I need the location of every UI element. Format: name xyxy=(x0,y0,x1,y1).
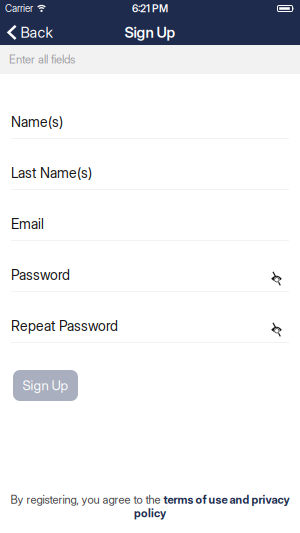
staticText: policy xyxy=(134,506,166,520)
staticText: Back xyxy=(20,24,52,41)
staticText: terms of use and privacy xyxy=(163,493,289,506)
staticText: Carrier xyxy=(5,2,33,14)
staticText: Last Name(s) xyxy=(11,164,92,181)
staticText: Email xyxy=(11,215,44,232)
button[interactable]: Show password xyxy=(270,318,289,334)
staticText: Password xyxy=(11,266,70,283)
staticText: By registering, you agree to the xyxy=(10,493,163,506)
staticText: 6:21 PM xyxy=(132,2,168,15)
button[interactable]: Show password xyxy=(270,267,289,283)
staticText: Enter all fields xyxy=(9,53,75,66)
staticText: Sign Up xyxy=(22,377,68,393)
button[interactable]: Back xyxy=(0,24,52,41)
staticText: Sign Up xyxy=(124,24,175,41)
staticText: Repeat Password xyxy=(11,317,118,334)
button[interactable]: Sign Up xyxy=(13,370,78,401)
button[interactable]: By registering, you agree to the xyxy=(10,493,289,520)
staticText: Name(s) xyxy=(11,113,63,130)
